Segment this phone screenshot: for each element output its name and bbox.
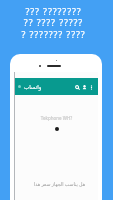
staticText: ??? ???????? ?? ???? ????? ? ??????? ???…	[0, 5, 110, 41]
staticText: هل يناسب الجهاز سعر هذا	[18, 181, 101, 188]
button[interactable]: Search	[74, 84, 80, 90]
button[interactable]: More options	[88, 84, 94, 90]
button[interactable]: Contacts	[81, 84, 87, 90]
staticText: واتساب	[24, 84, 42, 90]
staticText: Tekphone WH?	[15, 115, 98, 121]
